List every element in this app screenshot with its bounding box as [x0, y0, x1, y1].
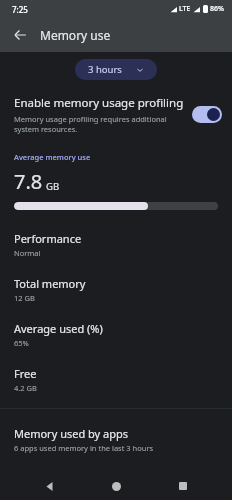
- staticText: Performance: [14, 231, 82, 246]
- staticText: 3 hours: [88, 63, 122, 76]
- staticText: GB: [46, 180, 60, 193]
- staticText: Memory used by apps: [14, 426, 129, 441]
- staticText: Average used (%): [14, 321, 103, 336]
- button[interactable]: Average used (%): [0, 312, 232, 357]
- button[interactable]: Recent apps: [166, 472, 200, 500]
- button[interactable]: Back: [6, 21, 34, 49]
- staticText: 86%: [210, 4, 224, 14]
- button[interactable]: Performance: [0, 222, 232, 267]
- button[interactable]: Enable memory usage profiling toggle: [192, 106, 222, 123]
- button[interactable]: Memory used by apps: [0, 417, 232, 462]
- staticText: 4.2 GB: [14, 383, 37, 393]
- staticText: 65%: [14, 338, 29, 348]
- staticText: Memory usage profiling requires addition…: [14, 114, 167, 134]
- staticText: Free: [14, 366, 37, 381]
- button[interactable]: Free: [0, 357, 232, 402]
- staticText: Normal: [14, 248, 41, 258]
- button[interactable]: 3 hours: [75, 59, 157, 80]
- staticText: Total memory: [14, 276, 86, 291]
- button[interactable]: Total memory: [0, 267, 232, 312]
- button[interactable]: Enable memory usage profiling: [0, 91, 232, 138]
- staticText: Average memory use: [14, 152, 91, 162]
- staticText: LTE: [179, 4, 191, 14]
- button[interactable]: Back: [33, 472, 67, 500]
- staticText: 7:25: [12, 4, 28, 15]
- staticText: 6 apps used memory in the last 3 hours: [14, 443, 154, 453]
- staticText: Enable memory usage profiling: [14, 95, 184, 111]
- staticText: 7.8: [14, 168, 43, 195]
- staticText: Memory use: [40, 27, 111, 43]
- button[interactable]: Home: [99, 472, 133, 500]
- staticText: 12 GB: [14, 293, 35, 303]
